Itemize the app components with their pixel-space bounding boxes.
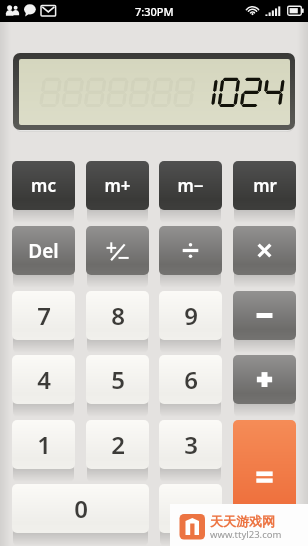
staticText: 2 — [111, 428, 125, 461]
staticText: 4 — [37, 363, 51, 396]
staticText: www.ttyl23.com — [210, 528, 282, 541]
staticText: 9 — [184, 299, 198, 332]
button[interactable]: Minus — [233, 291, 296, 340]
button[interactable]: 4 — [12, 355, 75, 404]
button[interactable]: 9 — [159, 291, 222, 340]
button[interactable]: Plus minus — [86, 226, 149, 275]
staticText: mc — [31, 174, 56, 197]
button[interactable]: Delete — [12, 226, 75, 275]
button[interactable]: 7 — [12, 291, 75, 340]
staticText: 7 — [37, 299, 51, 332]
staticText: 0 — [74, 492, 88, 525]
button[interactable]: Equals — [233, 420, 296, 534]
button[interactable]: 2 — [86, 420, 149, 469]
button[interactable]: 1 — [12, 420, 75, 469]
staticText: m− — [177, 174, 204, 197]
button[interactable]: 0 — [12, 484, 149, 533]
staticText: 5 — [111, 363, 125, 396]
staticText: 6 — [184, 363, 198, 396]
button[interactable]: 5 — [86, 355, 149, 404]
staticText: mr — [253, 174, 277, 197]
button[interactable]: Divide — [159, 226, 222, 275]
button[interactable]: 3 — [159, 420, 222, 469]
button[interactable]: m− — [159, 161, 222, 210]
staticText: . — [187, 492, 194, 525]
staticText: 7:30PM — [135, 4, 174, 19]
staticText: 天天游戏网 — [210, 513, 275, 529]
staticText: m+ — [104, 174, 131, 197]
staticText: 1 — [37, 428, 51, 461]
button[interactable]: m+ — [86, 161, 149, 210]
button[interactable]: Multiply — [233, 226, 296, 275]
staticText: 8 — [111, 299, 125, 332]
button[interactable]: Decimal point — [159, 484, 222, 533]
button[interactable]: mc — [12, 161, 75, 210]
staticText: 3 — [184, 428, 198, 461]
staticText: Del — [28, 238, 59, 264]
button[interactable]: mr — [233, 161, 296, 210]
button[interactable]: Plus — [233, 355, 296, 404]
button[interactable]: 8 — [86, 291, 149, 340]
button[interactable]: 6 — [159, 355, 222, 404]
